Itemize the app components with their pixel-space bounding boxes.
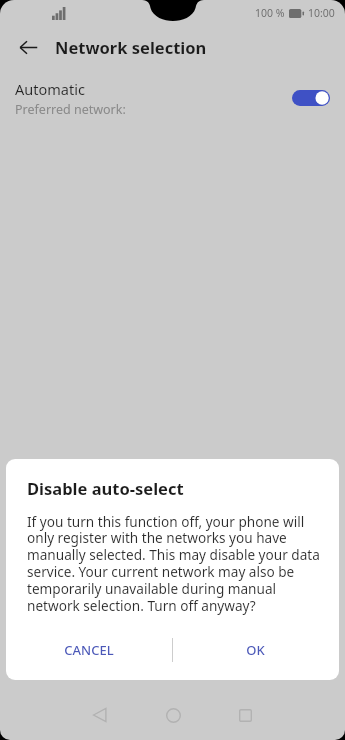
button[interactable]: CANCEL	[6, 629, 172, 670]
button[interactable]: Automatic network selection toggle	[292, 87, 330, 109]
staticText: OK	[246, 641, 265, 659]
staticText: 100 %	[255, 6, 285, 20]
staticText: If you turn this function off, your phon…	[27, 512, 323, 615]
staticText: Preferred network:	[15, 101, 126, 118]
button[interactable]: Back	[84, 699, 116, 731]
staticText: Network selection	[55, 36, 207, 58]
staticText: 10:00	[308, 6, 335, 20]
staticText: Automatic	[15, 79, 85, 99]
button[interactable]: Home	[157, 699, 189, 731]
button[interactable]: Automatic	[0, 76, 345, 120]
button[interactable]: Back	[10, 29, 46, 65]
button[interactable]: OK	[172, 629, 339, 670]
staticText: CANCEL	[64, 641, 114, 659]
staticText: Disable auto-select	[27, 477, 184, 499]
button[interactable]: Recent apps	[229, 699, 261, 731]
